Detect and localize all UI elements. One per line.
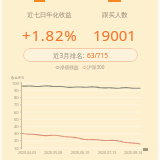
staticText: 沪深300	[87, 64, 105, 70]
staticText: 20	[14, 138, 19, 143]
staticText: 100	[12, 81, 19, 86]
staticText: 80	[14, 95, 19, 100]
staticText: 60	[14, 110, 19, 115]
staticText: 近3月排名:	[53, 51, 85, 60]
staticText: 近七日年化收益	[27, 11, 72, 19]
staticText: 2020-06-10	[71, 150, 90, 155]
staticText: 2020-04-03	[18, 150, 37, 155]
staticText: 40	[14, 124, 19, 129]
staticText: 30	[14, 131, 19, 136]
staticText: +1.82%	[22, 25, 78, 45]
staticText: 2020-08-14	[124, 150, 143, 155]
staticText: 70	[14, 102, 19, 107]
staticText: 收益率%	[11, 75, 24, 80]
staticText: 净值收益	[60, 64, 79, 70]
staticText: 90	[14, 88, 19, 93]
staticText: 63/715	[87, 51, 109, 60]
staticText: 19001	[93, 25, 136, 45]
staticText: 50	[14, 117, 19, 122]
staticText: 2020-05-08	[44, 150, 63, 155]
staticText: 10	[14, 146, 19, 151]
staticText: 2020-07-13	[98, 150, 117, 155]
staticText: 跟买人数	[102, 11, 128, 19]
button[interactable]: 近3月排名:	[23, 48, 138, 62]
